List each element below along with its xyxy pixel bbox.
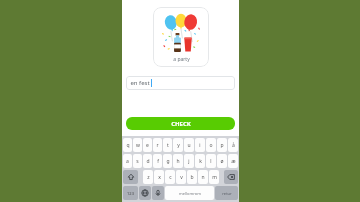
staticText: u <box>187 142 191 149</box>
button[interactable]: Voice input <box>152 186 164 200</box>
staticText: o <box>209 142 213 149</box>
other: Party illustration <box>159 11 203 55</box>
staticText: retur <box>222 191 232 196</box>
button[interactable]: retur <box>215 186 238 200</box>
button[interactable]: mellomrom <box>165 186 214 200</box>
button[interactable]: l <box>206 154 216 168</box>
button[interactable]: r <box>153 138 162 152</box>
staticText: g <box>166 158 170 165</box>
button[interactable]: Shift <box>123 170 138 184</box>
staticText: å <box>232 142 235 149</box>
staticText: ø <box>220 158 224 165</box>
button[interactable]: u <box>184 138 194 152</box>
button[interactable]: n <box>198 170 208 184</box>
button[interactable]: Party illustration <box>153 7 209 67</box>
staticText: m <box>212 174 217 181</box>
button[interactable]: b <box>187 170 197 184</box>
staticText: a party <box>173 56 190 63</box>
button[interactable]: å <box>228 138 238 152</box>
staticText: k <box>199 158 202 165</box>
staticText: t <box>167 142 169 149</box>
button[interactable]: f <box>153 154 162 168</box>
button[interactable]: w <box>133 138 142 152</box>
staticText: z <box>147 174 150 181</box>
button[interactable]: z <box>143 170 153 184</box>
staticText: x <box>158 174 161 181</box>
staticText: f <box>157 158 159 165</box>
staticText: n <box>201 174 205 181</box>
button[interactable]: d <box>143 154 152 168</box>
staticText: w <box>136 142 140 149</box>
staticText: p <box>220 142 224 149</box>
button[interactable]: v <box>176 170 186 184</box>
button[interactable]: Switch language <box>139 186 151 200</box>
button[interactable]: CHECK <box>126 117 235 130</box>
button[interactable]: o <box>206 138 216 152</box>
button[interactable]: s <box>133 154 142 168</box>
staticText: mellomrom <box>179 191 201 196</box>
button[interactable]: a <box>123 154 132 168</box>
staticText: c <box>169 174 172 181</box>
staticText: l <box>210 158 212 165</box>
button[interactable]: y <box>173 138 183 152</box>
button[interactable]: e <box>143 138 152 152</box>
button[interactable]: Backspace <box>224 170 238 184</box>
staticText: y <box>177 142 180 149</box>
staticText: i <box>199 142 201 149</box>
button[interactable]: æ <box>228 154 238 168</box>
staticText: r <box>156 142 159 149</box>
staticText: a <box>126 158 129 165</box>
button[interactable]: p <box>217 138 227 152</box>
button[interactable]: j <box>184 154 194 168</box>
staticText: q <box>126 142 130 149</box>
staticText: h <box>176 158 180 165</box>
button[interactable]: ø <box>217 154 227 168</box>
staticText: j <box>188 158 190 165</box>
button[interactable]: en fest <box>126 76 235 90</box>
staticText: s <box>136 158 139 165</box>
button[interactable]: g <box>163 154 172 168</box>
button[interactable]: m <box>209 170 219 184</box>
button[interactable]: 123 <box>123 186 138 200</box>
staticText: d <box>146 158 150 165</box>
staticText: e <box>146 142 149 149</box>
button[interactable]: c <box>165 170 175 184</box>
button[interactable]: q <box>123 138 132 152</box>
staticText: 123 <box>127 191 134 196</box>
staticText: en fest <box>130 79 150 87</box>
button[interactable]: x <box>154 170 164 184</box>
button[interactable]: t <box>163 138 172 152</box>
button[interactable]: k <box>195 154 205 168</box>
button[interactable]: i <box>195 138 205 152</box>
staticText: b <box>190 174 194 181</box>
staticText: æ <box>231 158 236 165</box>
staticText: CHECK <box>171 120 191 128</box>
button[interactable]: h <box>173 154 183 168</box>
staticText: v <box>180 174 183 181</box>
